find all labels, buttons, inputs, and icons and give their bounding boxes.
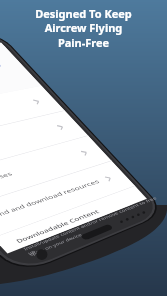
staticText: Designed To Keep Aircrew Flying Pain-Fre…: [35, 6, 132, 51]
